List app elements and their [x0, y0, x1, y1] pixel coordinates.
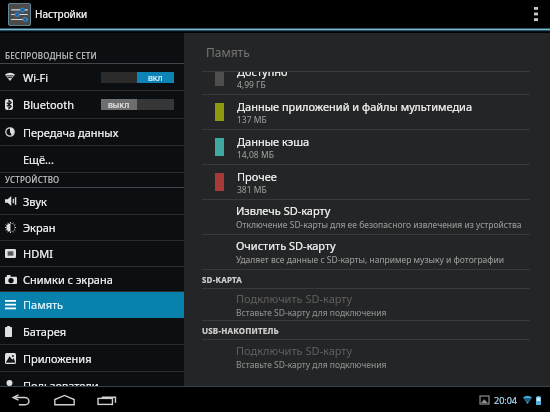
staticText: Память — [206, 44, 250, 60]
staticText: Снимки с экрана — [23, 272, 113, 287]
button[interactable]: HDMI — [0, 241, 184, 266]
staticText: 4,99 ГБ — [237, 79, 266, 91]
button[interactable]: Пользователи — [0, 372, 184, 386]
button[interactable]: Wi-Fi — [0, 64, 184, 90]
button[interactable]: Приложения — [0, 345, 184, 371]
button[interactable]: Bluetooth — [0, 91, 184, 118]
staticText: Экран — [23, 220, 56, 235]
staticText: Подключить SD-карту — [236, 343, 353, 358]
staticText: БЕСПРОВОДНЫЕ СЕТИ — [5, 50, 97, 61]
button[interactable]: More options — [522, 0, 550, 28]
staticText: Передача данных — [23, 125, 119, 140]
staticText: Настройки — [35, 7, 88, 21]
staticText: HDMI — [23, 246, 53, 261]
staticText: USB-НАКОПИТЕЛЬ — [202, 325, 279, 336]
button[interactable]: Подключить SD-карту — [184, 289, 550, 320]
staticText: Очистить SD-карту — [236, 238, 336, 253]
staticText: 137 МБ — [237, 114, 267, 126]
button[interactable]: Прочее — [184, 165, 550, 199]
staticText: Приложения — [23, 351, 92, 366]
staticText: Прочее — [237, 169, 277, 184]
staticText: 381 МБ — [237, 184, 267, 196]
button[interactable]: Звук — [0, 188, 184, 214]
staticText: Wi-Fi — [23, 70, 49, 85]
button[interactable]: Память — [0, 292, 184, 317]
staticText: Отключение SD-карты для ее безопасного и… — [236, 219, 522, 231]
staticText: Вставьте SD-карту для подключения — [236, 307, 387, 319]
staticText: Bluetooth — [23, 97, 75, 112]
staticText: 14,08 МБ — [237, 149, 274, 161]
staticText: Звук — [23, 194, 47, 209]
staticText: ВЫКЛ — [108, 100, 130, 110]
button[interactable]: Home — [48, 387, 81, 412]
staticText: Пользователи — [23, 378, 99, 386]
staticText: Память — [23, 297, 64, 312]
staticText: SD-КАРТА — [202, 274, 243, 285]
button[interactable]: Экран — [0, 215, 184, 240]
staticText: Ещё... — [23, 152, 54, 167]
button[interactable]: Доступно — [184, 72, 550, 94]
staticText: Данные кэша — [237, 134, 310, 149]
staticText: ВКЛ — [148, 73, 163, 83]
button[interactable]: Recent apps — [92, 387, 123, 412]
staticText: Данные приложений и файлы мультимедиа — [237, 99, 473, 114]
button[interactable]: Извлечь SD-карту — [184, 200, 550, 234]
button[interactable]: Ещё... — [0, 146, 184, 172]
button[interactable]: Очистить SD-карту — [184, 235, 550, 269]
button[interactable]: Данные приложений и файлы мультимедиа — [184, 95, 550, 129]
staticText: 20:04 — [494, 394, 518, 406]
staticText: Удаляет все данные с SD-карты, например … — [236, 254, 505, 266]
staticText: Извлечь SD-карту — [236, 203, 331, 218]
staticText: Доступно — [237, 72, 288, 79]
staticText: УСТРОЙСТВО — [5, 174, 60, 185]
button[interactable]: Батарея — [0, 318, 184, 344]
button[interactable]: Снимки с экрана — [0, 267, 184, 291]
button[interactable]: Передача данных — [0, 119, 184, 145]
staticText: Вставьте SD-карту для подключения — [236, 359, 387, 371]
staticText: Батарея — [23, 324, 66, 339]
button[interactable]: Подключить SD-карту — [184, 340, 550, 374]
button[interactable]: Back — [6, 387, 36, 412]
button[interactable]: Данные кэша — [184, 130, 550, 164]
staticText: Подключить SD-карту — [236, 291, 353, 306]
